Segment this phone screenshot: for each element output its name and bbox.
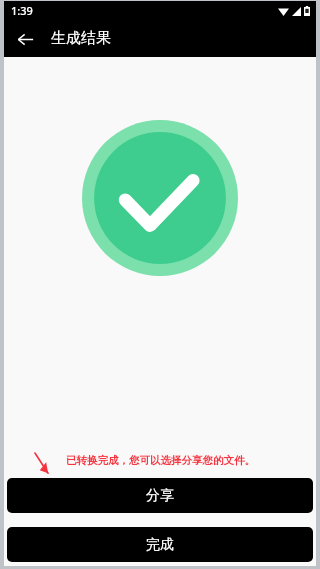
button[interactable]: Back	[8, 22, 42, 56]
button[interactable]: 完成	[7, 527, 313, 562]
staticText: 1:39	[11, 3, 33, 18]
staticText: 已转换完成，您可以选择分享您的文件。	[66, 454, 255, 467]
staticText: 生成结果	[51, 29, 111, 48]
button[interactable]: 分享	[7, 478, 313, 513]
staticText: 完成	[146, 536, 174, 554]
staticText: 分享	[146, 487, 174, 505]
